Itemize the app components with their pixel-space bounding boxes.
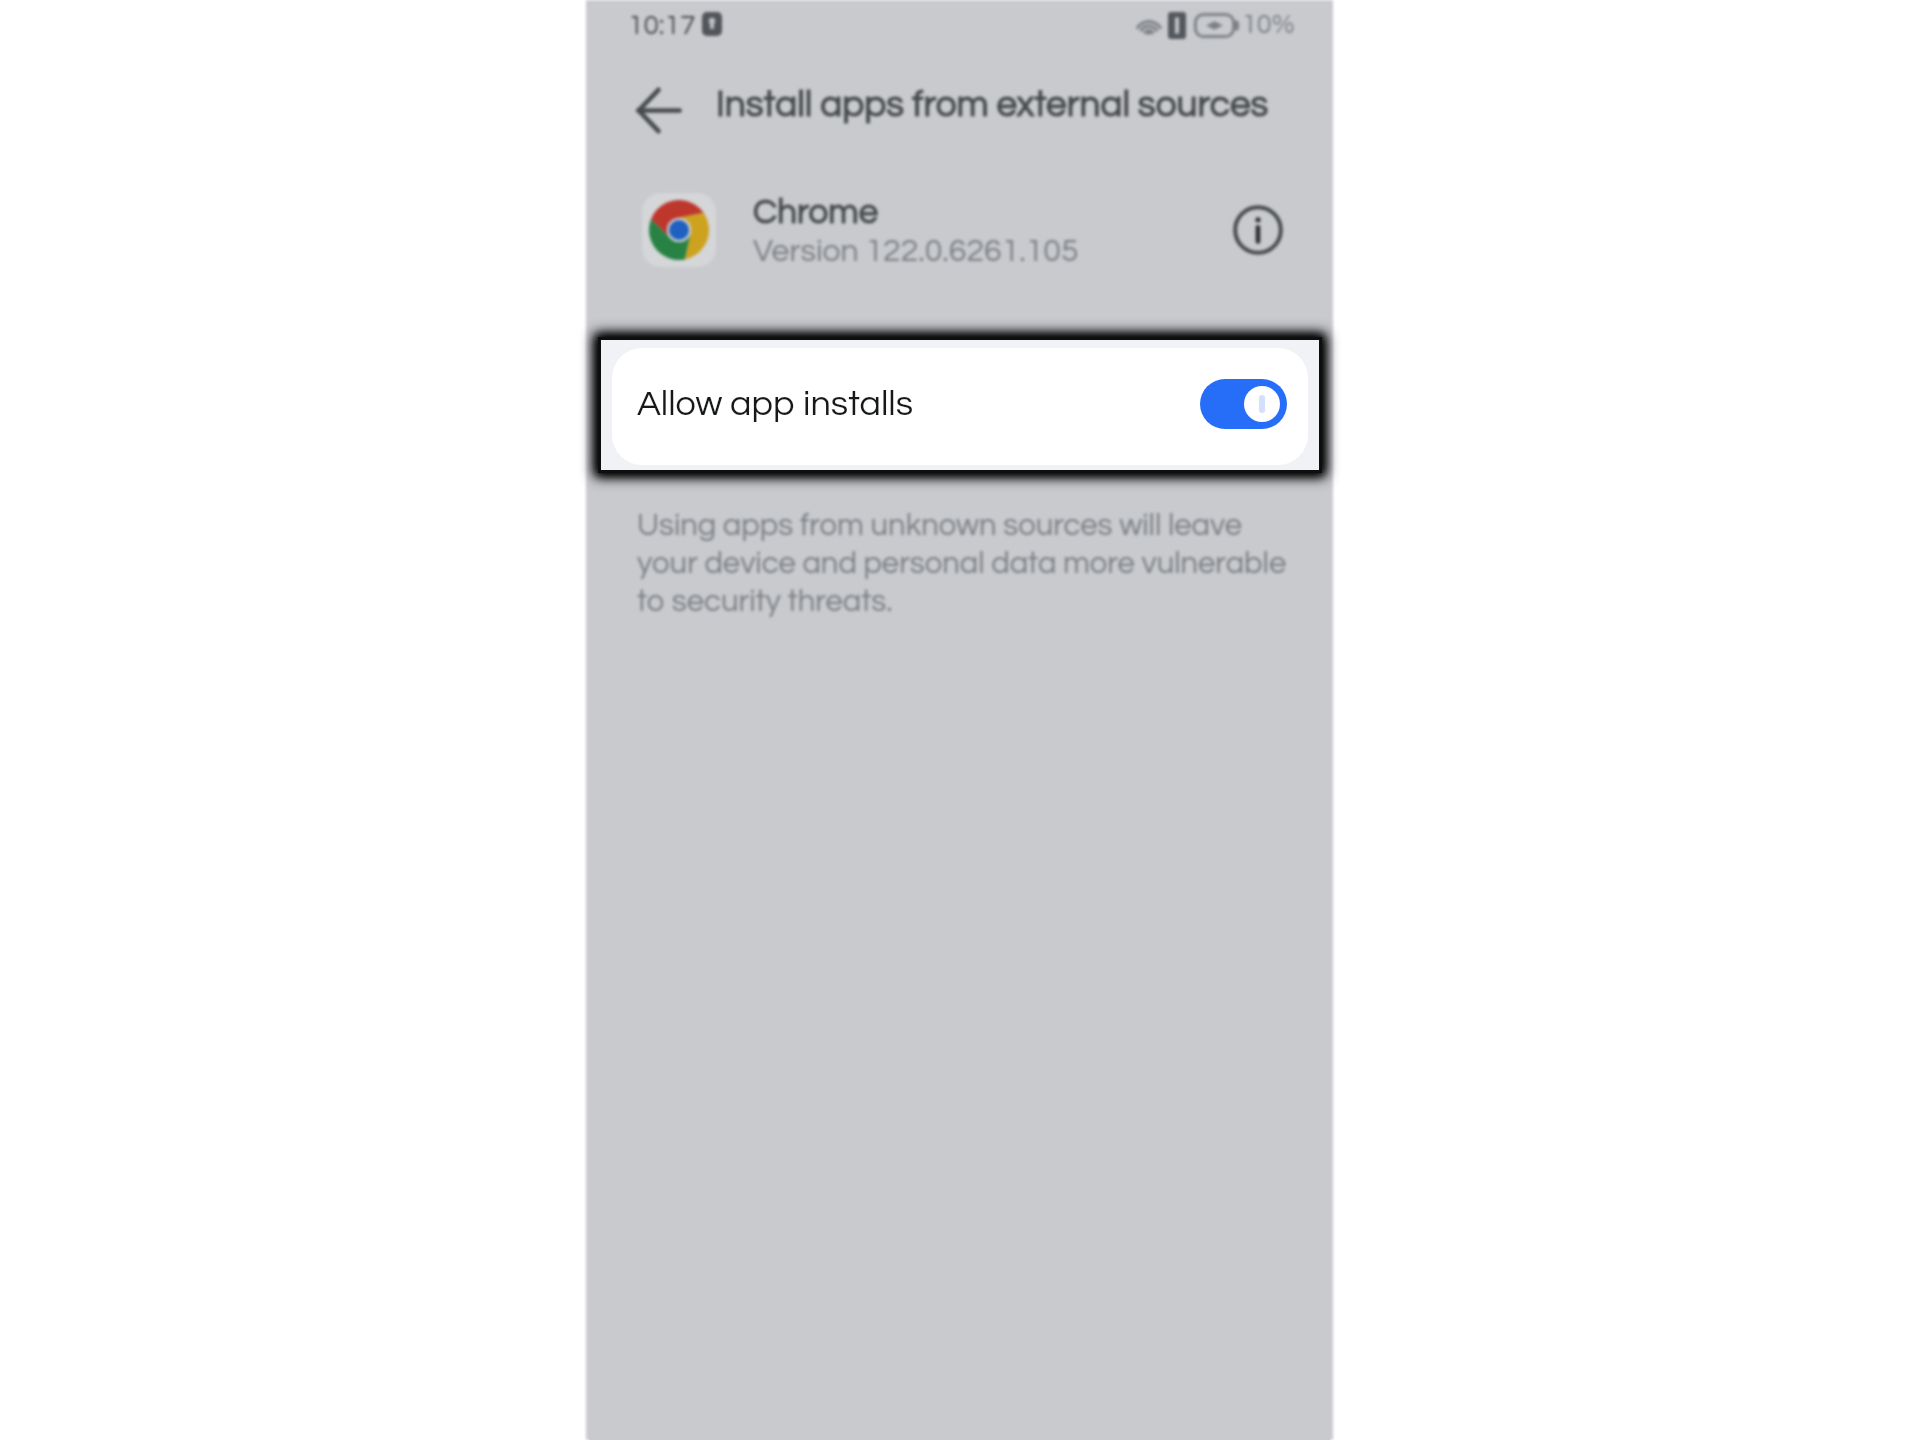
button[interactable]: Chrome (586, 178, 1333, 282)
button[interactable]: Allow app installs (612, 348, 1308, 465)
staticText: Using apps from unknown sources will lea… (637, 510, 1295, 618)
staticText: 10:17 (628, 11, 696, 40)
staticText: 10% (1242, 11, 1295, 39)
staticText: Install apps from external sources (716, 86, 1269, 124)
button[interactable]: App info (1222, 194, 1294, 266)
staticText: Allow app installs (637, 385, 914, 422)
staticText: Version 122.0.6261.105 (753, 235, 1079, 268)
button[interactable]: Back (627, 79, 689, 141)
staticText: Chrome (753, 194, 879, 230)
